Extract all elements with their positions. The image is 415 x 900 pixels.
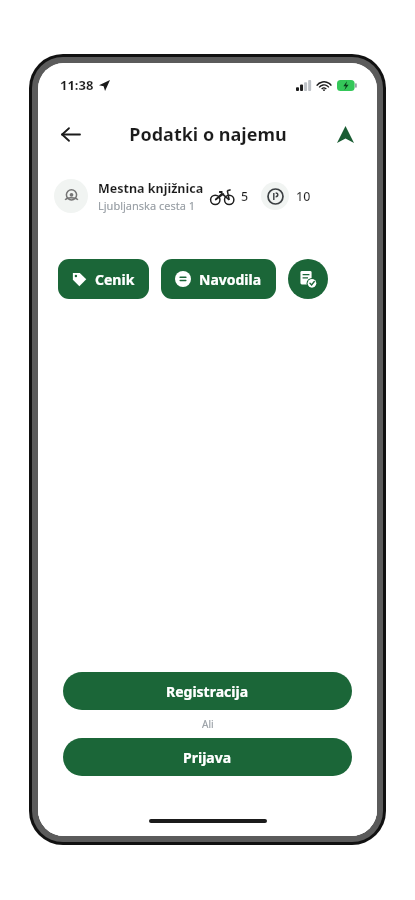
staticText: 10 xyxy=(296,188,311,205)
staticText: Ljubljanska cesta 1 xyxy=(98,198,196,213)
button[interactable]: Terms document xyxy=(288,259,328,299)
staticText: Mestna knjižnica xyxy=(98,180,204,197)
staticText: Podatki o najemu xyxy=(129,122,287,147)
staticText: Cenik xyxy=(95,270,135,289)
staticText: 11:38 xyxy=(60,76,94,94)
button[interactable]: Mestna knjižnica xyxy=(54,175,361,217)
staticText: Ali xyxy=(202,717,214,731)
button[interactable]: Navigate xyxy=(325,114,365,154)
button[interactable]: Navodila xyxy=(161,259,276,299)
staticText: Prijava xyxy=(183,748,232,767)
staticText: Navodila xyxy=(199,270,262,289)
button[interactable]: Back xyxy=(48,112,92,156)
button[interactable]: Prijava xyxy=(63,738,352,776)
button[interactable]: Registracija xyxy=(63,672,352,710)
button[interactable]: Cenik xyxy=(58,259,149,299)
staticText: 5 xyxy=(241,188,249,205)
staticText: Registracija xyxy=(166,682,249,701)
